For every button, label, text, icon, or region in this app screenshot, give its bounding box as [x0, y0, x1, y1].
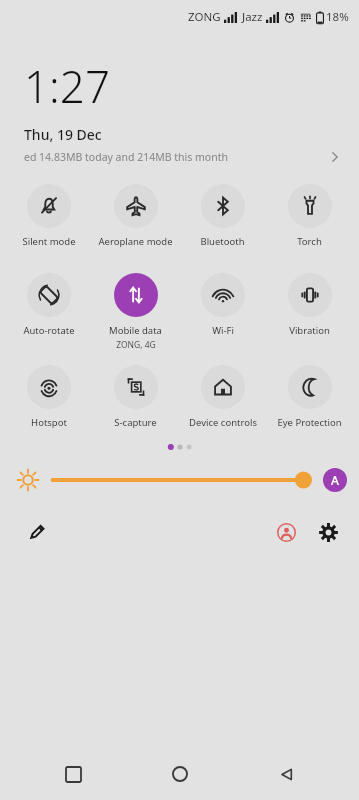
- button[interactable]: Vibration: [266, 273, 353, 337]
- staticText: Bluetooth: [200, 235, 245, 248]
- button[interactable]: User profile: [273, 519, 299, 545]
- button[interactable]: [50, 467, 314, 493]
- staticText: 1:27: [24, 56, 111, 116]
- button[interactable]: Back: [269, 757, 303, 791]
- staticText: Jazz: [242, 9, 263, 25]
- staticText: ZONG, 4G: [116, 339, 156, 351]
- button[interactable]: Bluetooth: [179, 184, 266, 248]
- button[interactable]: Settings: [315, 519, 341, 545]
- button[interactable]: Aeroplane mode: [92, 184, 179, 248]
- button[interactable]: Torch: [266, 184, 353, 248]
- staticText: Eye Protection: [277, 416, 342, 429]
- staticText: 18%: [326, 9, 349, 25]
- button[interactable]: Silent mode: [6, 184, 92, 248]
- button[interactable]: Home: [163, 757, 197, 791]
- staticText: Thu, 19 Dec: [24, 125, 102, 144]
- button[interactable]: Auto brightness: [323, 468, 347, 492]
- button[interactable]: Auto-rotate: [6, 273, 92, 337]
- button[interactable]: Hotspot: [6, 365, 92, 429]
- staticText: Hotspot: [31, 416, 67, 429]
- staticText: Wi-Fi: [212, 324, 234, 337]
- staticText: S-capture: [114, 416, 157, 429]
- staticText: Silent mode: [22, 235, 76, 248]
- staticText: Vibration: [289, 324, 330, 337]
- button[interactable]: ed 14.83MB today and 214MB this month: [24, 150, 343, 164]
- staticText: ZONG: [188, 9, 221, 25]
- button[interactable]: Eye Protection: [266, 365, 353, 429]
- button[interactable]: Wi-Fi: [179, 273, 266, 337]
- staticText: Torch: [297, 235, 322, 248]
- staticText: A: [331, 472, 339, 488]
- other: Brightness: [16, 468, 40, 492]
- button[interactable]: Edit: [24, 519, 50, 545]
- staticText: Aeroplane mode: [98, 235, 173, 248]
- staticText: ed 14.83MB today and 214MB this month: [24, 150, 228, 164]
- staticText: Auto-rotate: [23, 324, 75, 337]
- button[interactable]: Recent apps: [56, 757, 90, 791]
- button[interactable]: S-capture: [92, 365, 179, 429]
- staticText: Device controls: [189, 416, 257, 429]
- staticText: Mobile data: [109, 324, 162, 337]
- button[interactable]: Device controls: [179, 365, 266, 429]
- button[interactable]: Mobile data: [92, 273, 179, 351]
